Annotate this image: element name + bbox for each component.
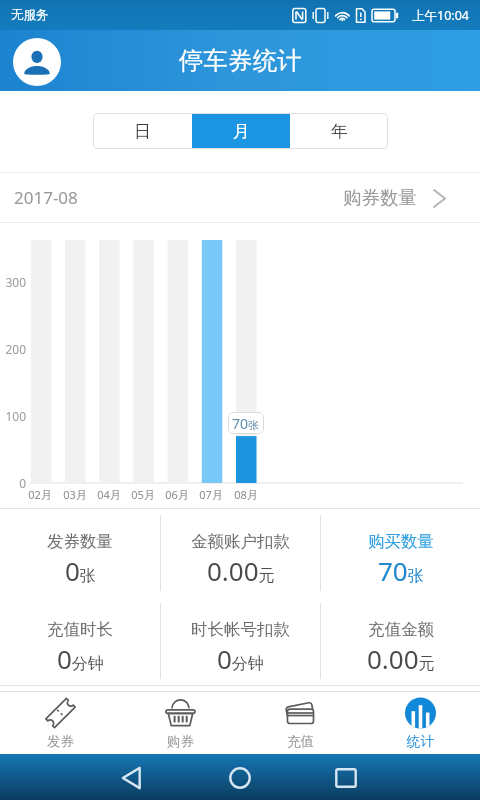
button[interactable]: 充值时长: [0, 597, 160, 685]
button[interactable]: 月: [192, 113, 290, 149]
staticText: 上午10:04: [412, 7, 469, 24]
staticText: 购买数量: [368, 531, 434, 552]
staticText: 发券数量: [47, 531, 113, 552]
staticText: 06月: [160, 487, 194, 502]
button[interactable]: 充值: [240, 692, 360, 754]
staticText: 300: [0, 274, 26, 290]
staticText: 70张: [232, 414, 260, 433]
staticText: 0分钟: [57, 641, 104, 676]
button[interactable]: 日: [93, 113, 192, 149]
button[interactable]: 返回: [120, 767, 144, 789]
staticText: 0.00元: [207, 553, 275, 588]
button[interactable]: 发券: [0, 692, 120, 754]
staticText: 无服务: [11, 7, 49, 23]
button[interactable]: 购券数量: [343, 173, 480, 222]
staticText: 08月: [229, 487, 263, 502]
staticText: 02月: [23, 487, 57, 502]
staticText: 04月: [92, 487, 126, 502]
staticText: 07月: [194, 487, 228, 502]
staticText: 发券: [47, 733, 74, 750]
button[interactable]: 购券: [120, 692, 240, 754]
staticText: 100: [0, 408, 26, 424]
staticText: 0分钟: [217, 641, 264, 676]
button[interactable]: 年: [290, 113, 388, 149]
staticText: 购券: [167, 733, 194, 750]
staticText: 金额账户扣款: [191, 531, 290, 552]
staticText: 0: [0, 475, 26, 491]
button[interactable]: 金额账户扣款: [161, 509, 320, 597]
button[interactable]: 时长帐号扣款: [161, 597, 320, 685]
staticText: 200: [0, 341, 26, 357]
staticText: 日: [134, 121, 151, 142]
staticText: 05月: [126, 487, 160, 502]
button[interactable]: 主页: [229, 767, 251, 789]
button[interactable]: 最近任务: [335, 768, 357, 788]
staticText: 月: [233, 121, 250, 142]
staticText: 停车券统计: [179, 45, 302, 76]
staticText: 充值时长: [47, 619, 113, 640]
staticText: 统计: [407, 733, 434, 750]
staticText: 购券数量: [343, 186, 417, 209]
staticText: 0张: [65, 553, 96, 588]
staticText: 03月: [58, 487, 92, 502]
staticText: 2017-08: [14, 186, 78, 209]
button[interactable]: 用户: [13, 38, 61, 86]
button[interactable]: 充值金额: [321, 597, 480, 685]
staticText: 充值金额: [368, 619, 434, 640]
staticText: 70张: [378, 553, 424, 588]
staticText: 年: [331, 121, 348, 142]
staticText: 时长帐号扣款: [191, 619, 290, 640]
button[interactable]: 购买数量: [321, 509, 480, 597]
button[interactable]: 统计: [360, 692, 480, 754]
button[interactable]: 发券数量: [0, 509, 160, 597]
staticText: 0.00元: [367, 641, 435, 676]
staticText: 充值: [287, 733, 314, 750]
